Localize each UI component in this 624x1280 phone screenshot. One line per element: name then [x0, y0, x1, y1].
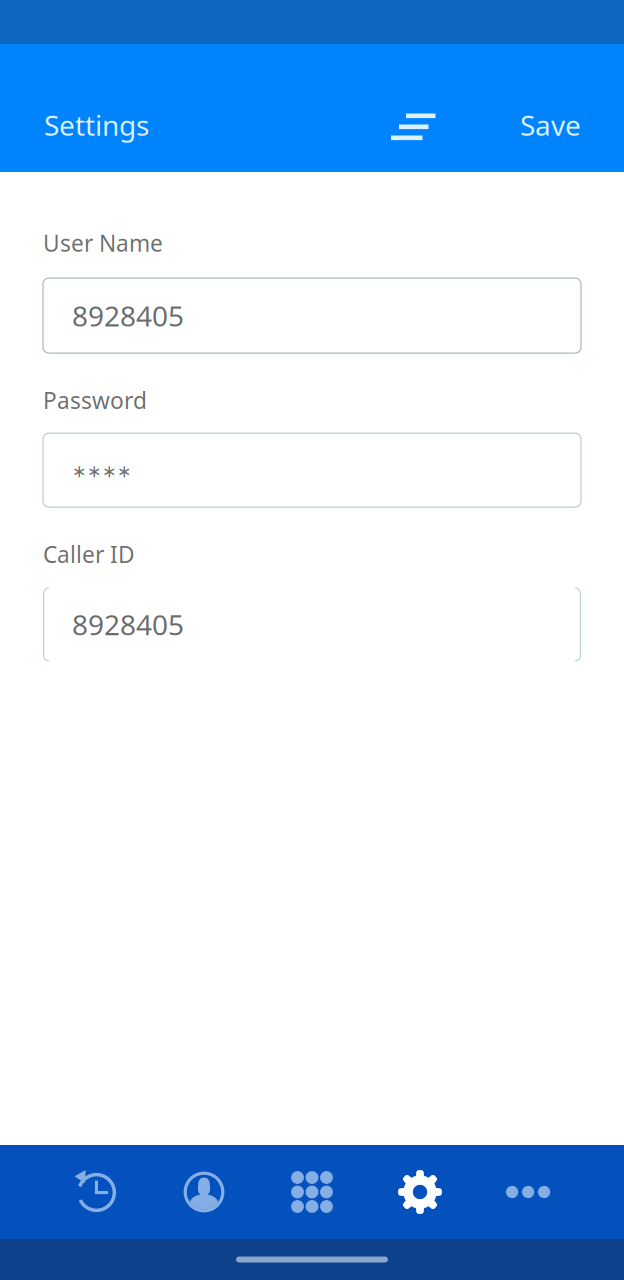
staticText: Caller ID — [43, 539, 135, 569]
button[interactable]: Sort — [369, 104, 458, 150]
button[interactable]: ∗∗∗∗ — [43, 433, 581, 507]
button[interactable]: Contacts — [150, 1145, 258, 1239]
button[interactable]: More — [474, 1145, 582, 1239]
button[interactable]: Keypad — [258, 1145, 366, 1239]
staticText: 8928405 — [72, 297, 184, 334]
staticText: User Name — [43, 228, 163, 258]
button[interactable]: 8928405 — [43, 278, 581, 353]
staticText: Password — [43, 385, 147, 415]
button[interactable]: Recents — [42, 1145, 150, 1239]
staticText: 8928405 — [72, 606, 184, 643]
staticText: ∗∗∗∗ — [72, 461, 132, 481]
button[interactable]: Save — [500, 104, 624, 150]
button[interactable]: Settings — [366, 1145, 474, 1239]
staticText: Save — [520, 106, 581, 144]
button[interactable]: 8928405 — [43, 587, 581, 661]
button[interactable]: Settings — [0, 104, 169, 150]
staticText: Settings — [44, 106, 149, 144]
